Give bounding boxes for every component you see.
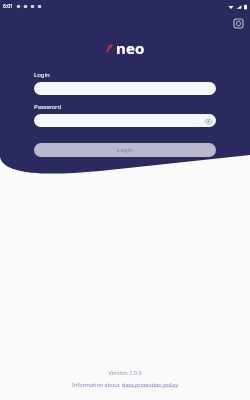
staticText: 6:01 [3,3,13,10]
button[interactable]: Language [232,17,245,30]
staticText: data protection policy [122,381,179,388]
button[interactable] [34,82,216,95]
button[interactable]: Show password [34,114,216,127]
button[interactable]: Information about [72,381,179,388]
staticText: Login [34,71,50,79]
staticText: Password [34,103,62,111]
staticText: Login [117,146,133,154]
staticText: Version 1.0.0 [108,369,142,376]
button[interactable]: Show password [204,117,212,125]
button[interactable]: Login [34,143,216,157]
staticText: neo [116,38,145,58]
staticText: Information about [72,381,122,388]
